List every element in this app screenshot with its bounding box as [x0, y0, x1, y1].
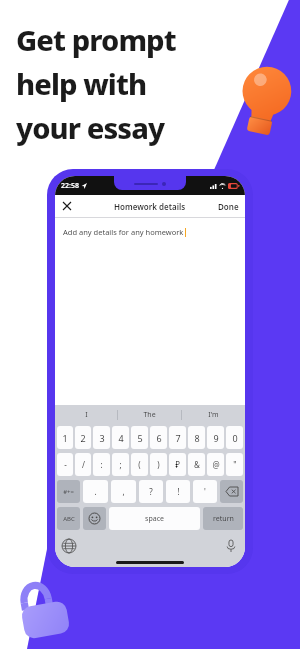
- button[interactable]: .: [83, 480, 108, 503]
- button[interactable]: Switch language: [61, 538, 77, 554]
- staticText: I: [85, 410, 88, 420]
- button[interactable]: :: [93, 453, 110, 476]
- staticText: 2: [80, 432, 86, 444]
- button[interactable]: return: [203, 507, 243, 530]
- staticText: ": [233, 459, 237, 470]
- button[interactable]: 5: [131, 426, 148, 449]
- staticText: The: [143, 410, 156, 420]
- button[interactable]: 0: [226, 426, 243, 449]
- staticText: !: [177, 486, 180, 497]
- button[interactable]: I'm: [182, 405, 245, 424]
- staticText: /: [82, 459, 85, 470]
- staticText: ,: [122, 486, 125, 497]
- button[interactable]: @: [207, 453, 224, 476]
- button[interactable]: I: [55, 405, 117, 424]
- staticText: Homework details: [114, 201, 186, 212]
- staticText: 1: [62, 432, 68, 444]
- staticText: your essay: [16, 108, 165, 147]
- button[interactable]: ?: [139, 480, 163, 503]
- staticText: 4: [118, 432, 124, 444]
- staticText: :: [100, 459, 103, 470]
- staticText: 7: [175, 432, 181, 444]
- button[interactable]: Done: [212, 197, 245, 216]
- button[interactable]: 8: [188, 426, 205, 449]
- staticText: ?: [149, 486, 153, 497]
- staticText: ₽: [175, 459, 180, 470]
- staticText: ABC: [63, 515, 75, 523]
- staticText: space: [145, 514, 164, 524]
- button[interactable]: 1: [57, 426, 73, 449]
- staticText: @: [212, 459, 220, 470]
- button[interactable]: Close: [60, 199, 74, 213]
- button[interactable]: (: [131, 453, 148, 476]
- staticText: (: [138, 459, 141, 470]
- button[interactable]: 4: [112, 426, 129, 449]
- button[interactable]: The: [118, 405, 181, 424]
- staticText: 8: [194, 432, 200, 444]
- button[interactable]: /: [75, 453, 91, 476]
- staticText: Get prompt: [16, 20, 176, 59]
- staticText: return: [213, 514, 234, 524]
- staticText: 3: [99, 432, 105, 444]
- staticText: .: [94, 486, 97, 497]
- staticText: help with: [16, 64, 147, 103]
- staticText: Done: [218, 201, 239, 212]
- staticText: 5: [137, 432, 143, 444]
- staticText: Add any details for any homework: [63, 227, 184, 237]
- button[interactable]: ;: [112, 453, 129, 476]
- button[interactable]: ABC: [57, 507, 80, 530]
- staticText: ): [157, 459, 160, 470]
- staticText: ;: [119, 459, 122, 470]
- button[interactable]: ": [226, 453, 243, 476]
- button[interactable]: 7: [169, 426, 186, 449]
- staticText: 6: [156, 432, 162, 444]
- staticText: 9: [213, 432, 219, 444]
- staticText: -: [64, 459, 67, 470]
- button[interactable]: ': [193, 480, 217, 503]
- button[interactable]: ₽: [169, 453, 186, 476]
- button[interactable]: ,: [111, 480, 136, 503]
- button[interactable]: 2: [75, 426, 91, 449]
- button[interactable]: Dictate: [223, 538, 239, 554]
- staticText: #+=: [63, 488, 74, 496]
- button[interactable]: Backspace: [220, 480, 243, 503]
- button[interactable]: -: [57, 453, 73, 476]
- staticText: ': [204, 486, 206, 497]
- button[interactable]: 6: [150, 426, 167, 449]
- staticText: &: [194, 459, 200, 470]
- button[interactable]: &: [188, 453, 205, 476]
- staticText: 0: [232, 432, 238, 444]
- staticText: 22:58: [61, 181, 79, 191]
- button[interactable]: Emoji: [83, 507, 106, 530]
- button[interactable]: !: [166, 480, 190, 503]
- staticText: I'm: [208, 410, 219, 420]
- button[interactable]: 3: [93, 426, 110, 449]
- button[interactable]: 9: [207, 426, 224, 449]
- button[interactable]: ): [150, 453, 167, 476]
- button[interactable]: space: [109, 507, 200, 530]
- button[interactable]: #+=: [57, 480, 80, 503]
